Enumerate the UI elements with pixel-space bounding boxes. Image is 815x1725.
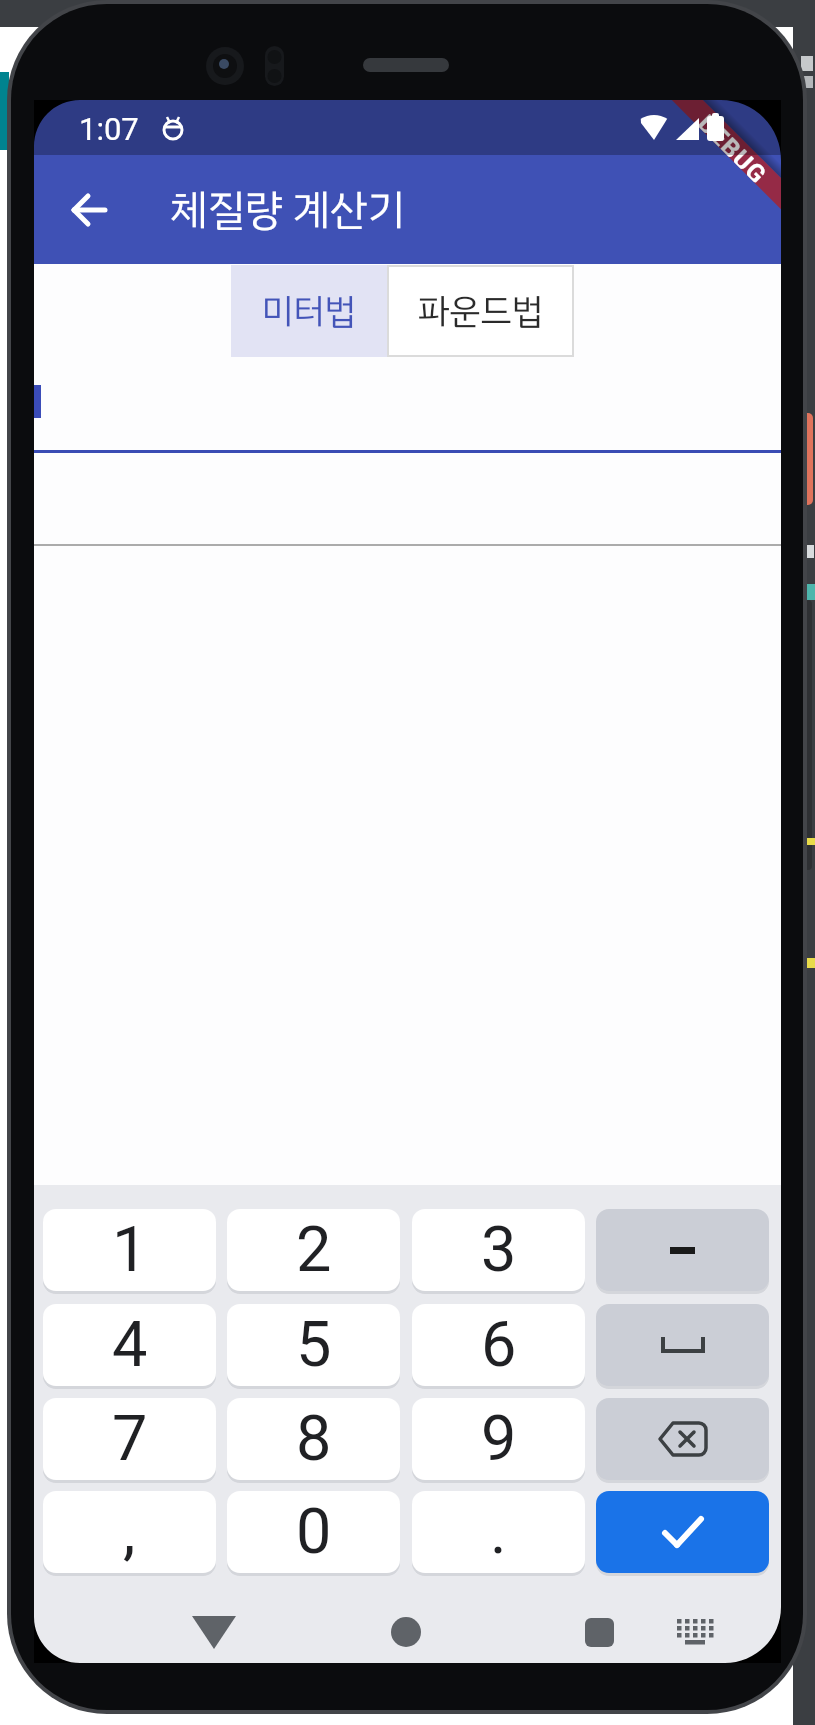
button[interactable]: 미터법 xyxy=(231,265,387,357)
button[interactable]: . xyxy=(412,1491,585,1573)
staticText: 6 xyxy=(481,1308,517,1382)
button[interactable]: 2 xyxy=(227,1209,400,1291)
staticText: 4 xyxy=(112,1308,148,1382)
button[interactable] xyxy=(596,1491,769,1573)
button[interactable] xyxy=(374,1600,438,1663)
button[interactable]: 7 xyxy=(43,1398,216,1480)
button[interactable]: 9 xyxy=(412,1398,585,1480)
button[interactable] xyxy=(596,1209,769,1291)
button[interactable]: 3 xyxy=(412,1209,585,1291)
staticText: 3 xyxy=(481,1213,517,1287)
button[interactable]: 5 xyxy=(227,1304,400,1386)
staticText: 체질량 계산기 xyxy=(170,178,405,241)
staticText: 미터법 xyxy=(262,285,356,338)
staticText: 1:07 xyxy=(79,111,139,147)
staticText: 파운드법 xyxy=(418,285,543,338)
button[interactable]: 1 xyxy=(43,1209,216,1291)
staticText: 8 xyxy=(296,1402,332,1476)
button[interactable] xyxy=(662,1600,728,1663)
staticText: 9 xyxy=(481,1402,517,1476)
staticText: 7 xyxy=(112,1402,148,1476)
button[interactable]: 6 xyxy=(412,1304,585,1386)
staticText: . xyxy=(490,1495,507,1569)
button[interactable] xyxy=(54,155,124,264)
button[interactable] xyxy=(179,1600,249,1663)
button[interactable]: 파운드법 xyxy=(387,265,574,357)
staticText: 2 xyxy=(296,1213,332,1287)
button[interactable]: 8 xyxy=(227,1398,400,1480)
staticText: , xyxy=(123,1495,136,1569)
button[interactable]: , xyxy=(43,1491,216,1573)
staticText: DEBUG xyxy=(697,109,772,185)
staticText: 5 xyxy=(296,1308,332,1382)
button[interactable] xyxy=(596,1398,769,1480)
staticText: 1 xyxy=(112,1213,148,1287)
button[interactable]: 0 xyxy=(227,1491,400,1573)
button[interactable]: 4 xyxy=(43,1304,216,1386)
button[interactable] xyxy=(596,1304,769,1386)
staticText: 0 xyxy=(296,1495,332,1569)
button[interactable] xyxy=(567,1600,631,1663)
